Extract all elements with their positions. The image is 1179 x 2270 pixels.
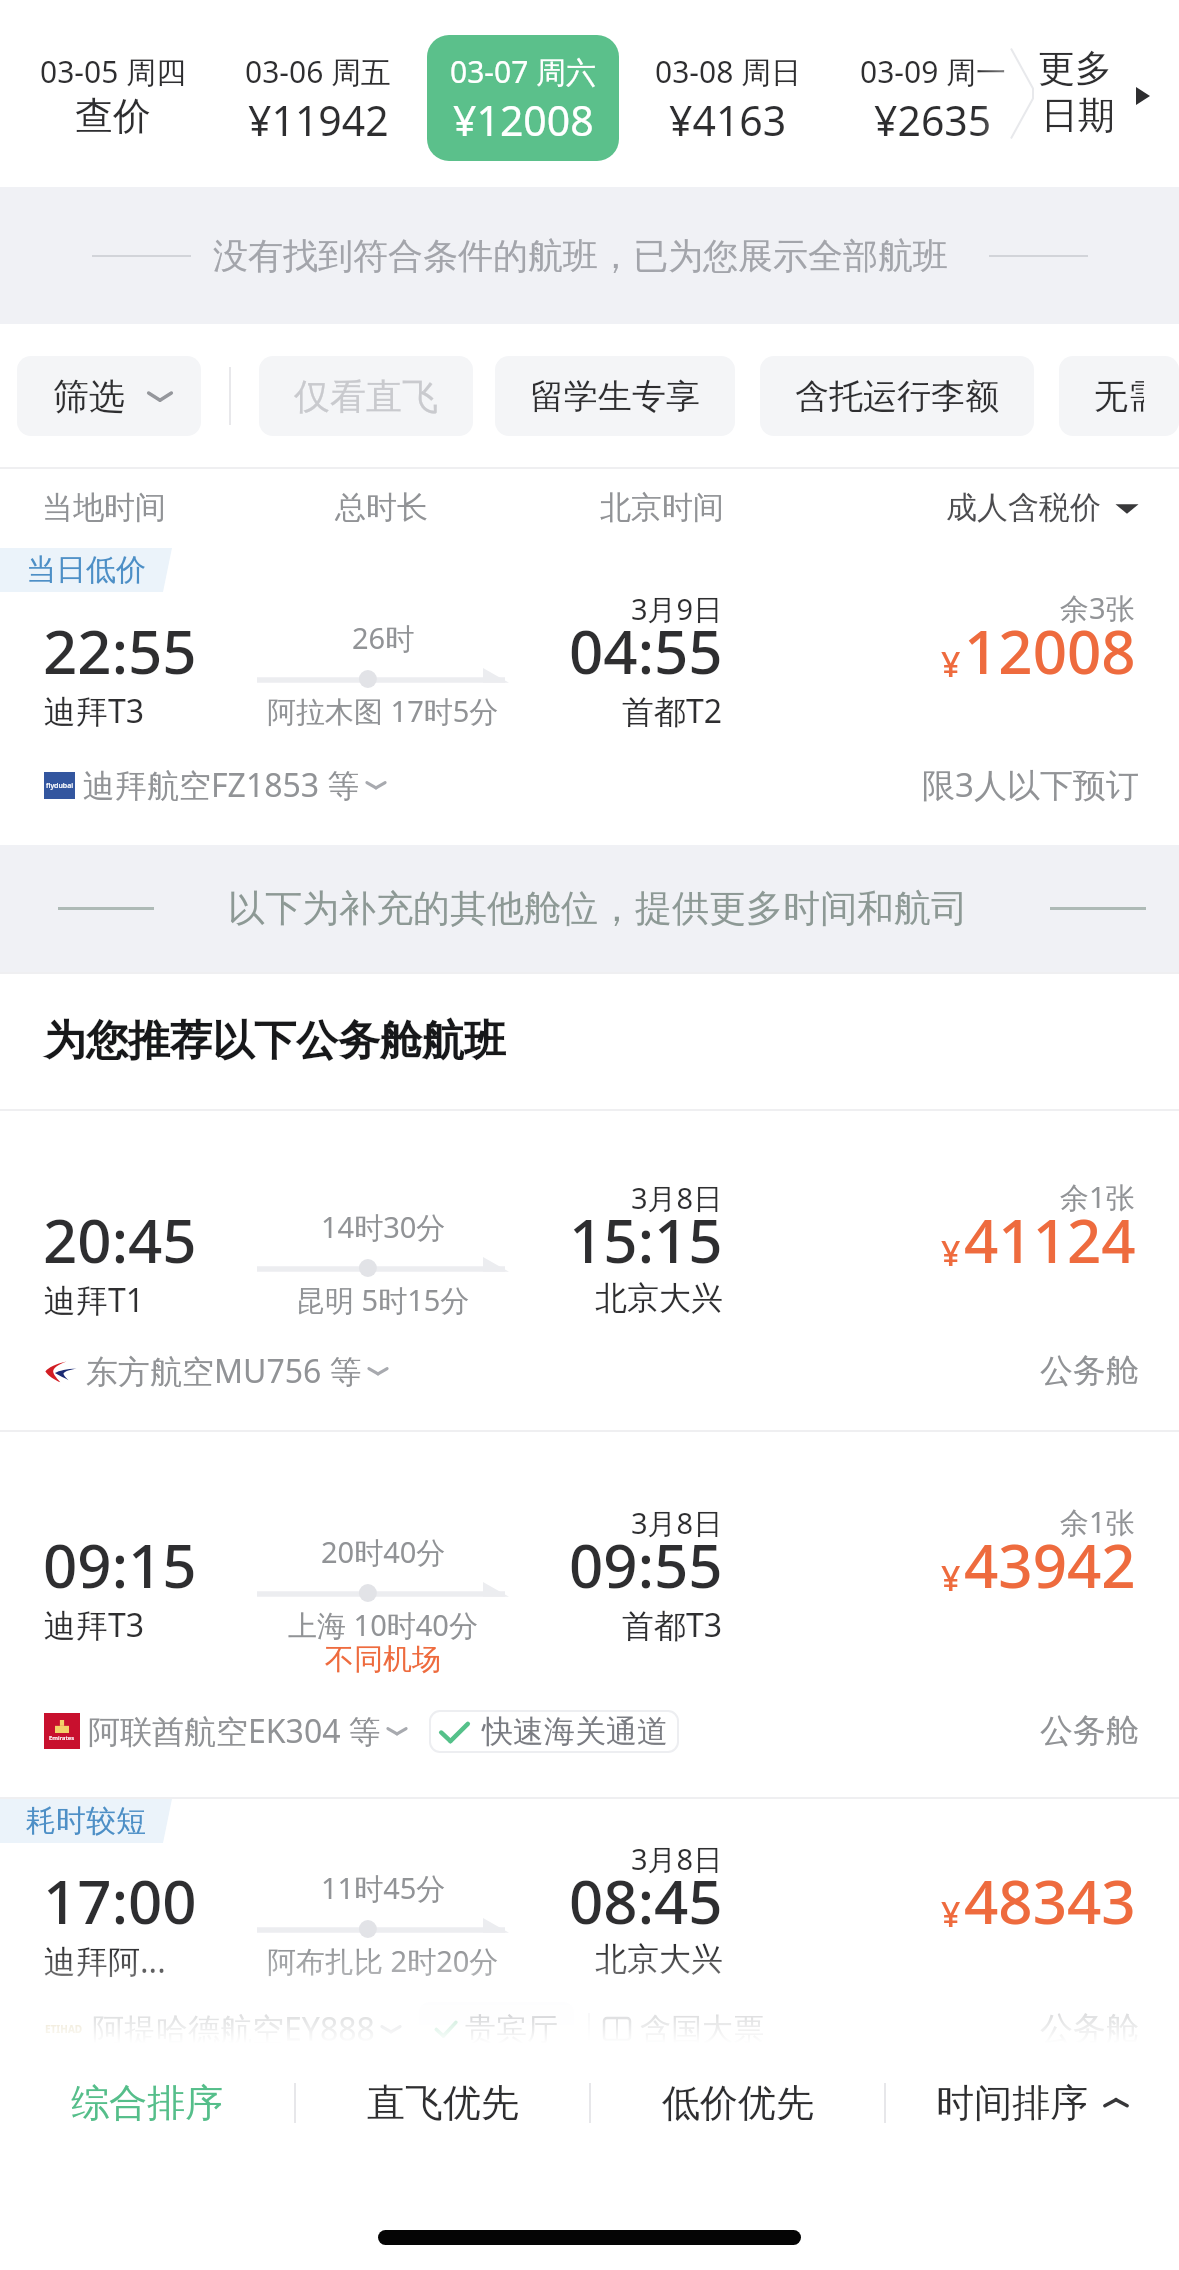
button[interactable]: 03-08 周日	[632, 35, 824, 161]
staticText: 低价优先	[662, 2079, 814, 2127]
staticText: 上海 10时40分	[288, 1605, 478, 1645]
staticText: 迪拜阿...	[44, 1939, 166, 1983]
other: 更多日期	[1136, 87, 1150, 105]
staticText: 阿拉木图 17时5分	[267, 691, 499, 731]
staticText: 查价	[75, 92, 151, 140]
staticText: 总时长	[335, 488, 428, 527]
staticText: 北京大兴	[595, 1278, 723, 1318]
staticText: 公务舱	[1040, 2008, 1139, 2050]
staticText: 03-08 周日	[655, 51, 802, 92]
staticText: 20时40分	[321, 1532, 446, 1572]
staticText: 09:15	[43, 1524, 197, 1606]
staticText: 48343	[964, 1860, 1136, 1942]
staticText: 首都T2	[622, 689, 723, 733]
button[interactable]: flydubai	[44, 763, 388, 807]
staticText: 余1张	[1060, 1177, 1135, 1217]
staticText: 迪拜T1	[44, 1278, 145, 1322]
button[interactable]: 低价优先	[591, 2044, 884, 2162]
staticText: 当地时间	[42, 488, 166, 527]
staticText: 22:55	[43, 610, 197, 692]
button[interactable]: 快速海关通道	[429, 1710, 679, 1753]
staticText: 日期	[1041, 92, 1115, 139]
button[interactable]: 含托运行李额	[760, 356, 1034, 436]
staticText: ¥	[941, 1230, 961, 1276]
button[interactable]: 更多	[1035, 0, 1179, 187]
staticText: 阿布扎比 2时20分	[267, 1941, 499, 1981]
button[interactable]: 09:15	[0, 1432, 1179, 1799]
staticText: 11时45分	[321, 1868, 446, 1908]
button[interactable]: ETIHAD	[44, 2007, 403, 2051]
staticText: 快速海关通道	[482, 1712, 668, 1751]
button[interactable]: Emirates	[44, 1709, 409, 1753]
staticText: 迪拜T3	[44, 689, 145, 733]
button[interactable]: 仅看直飞	[259, 356, 473, 436]
staticText: 03-05 周四	[40, 51, 187, 92]
button[interactable]: 03-06 周五	[222, 35, 414, 161]
staticText: 北京时间	[600, 488, 724, 527]
staticText: 迪拜航空FZ1853 等	[83, 763, 360, 807]
staticText: 含托运行李额	[795, 375, 999, 418]
staticText: 成人含税价	[946, 488, 1101, 527]
staticText: 昆明 5时15分	[296, 1280, 470, 1320]
staticText: 公务舱	[1040, 1710, 1139, 1752]
staticText: 43942	[964, 1524, 1136, 1606]
staticText: 3月9日	[631, 589, 723, 629]
staticText: 14时30分	[321, 1207, 446, 1247]
staticText: 含国大票	[640, 2010, 764, 2049]
staticText: ¥11942	[248, 92, 389, 148]
staticText: 更多	[1038, 45, 1112, 92]
button[interactable]: 耗时较短	[0, 1799, 1179, 2129]
button[interactable]: 03-07 周六	[427, 35, 619, 161]
button[interactable]: 03-05 周四	[17, 35, 209, 161]
staticText: 04:55	[569, 610, 723, 692]
button[interactable]: 综合排序	[0, 2044, 294, 2162]
staticText: 12008	[964, 610, 1136, 692]
staticText: 东方航空MU756 等	[86, 1349, 362, 1393]
staticText: 20:45	[43, 1199, 197, 1281]
staticText: ETIHAD	[45, 2022, 83, 2036]
staticText: 仅看直飞	[294, 374, 438, 419]
staticText: 没有找到符合条件的航班，已为您展示全部航班	[213, 234, 948, 278]
staticText: ¥	[941, 641, 961, 687]
staticText: 首都T3	[622, 1603, 723, 1647]
staticText: 03-09 周一	[860, 51, 1007, 92]
staticText: 3月8日	[631, 1178, 723, 1218]
button[interactable]: 20:45	[0, 1111, 1179, 1432]
staticText: 筛选	[53, 374, 125, 419]
staticText: 耗时较短	[26, 1802, 146, 1840]
staticText: 时间排序	[936, 2079, 1088, 2127]
button[interactable]: 筛选	[17, 356, 201, 436]
staticText: 留学生专享	[530, 375, 700, 418]
staticText: ¥2635	[874, 92, 992, 148]
staticText: flydubai	[46, 781, 74, 791]
staticText: 03-06 周五	[245, 51, 392, 92]
button[interactable]: 03-09 周一	[837, 35, 1029, 161]
button[interactable]: 留学生专享	[495, 356, 735, 436]
staticText: 以下为补充的其他舱位，提供更多时间和航司	[228, 885, 968, 932]
staticText: 15:15	[569, 1199, 723, 1281]
staticText: 直飞优先	[367, 2079, 519, 2127]
staticText: 当日低价	[26, 551, 146, 589]
button[interactable]: 成人含税价	[946, 488, 1139, 527]
staticText: 公务舱	[1040, 1350, 1139, 1392]
staticText: 3月8日	[631, 1839, 723, 1879]
button[interactable]: 贵宾厅	[435, 2002, 558, 2056]
staticText: 26时	[352, 618, 415, 658]
button[interactable]: 无需中转签证	[1059, 356, 1179, 436]
staticText: ¥	[941, 1555, 961, 1601]
staticText: 北京大兴	[595, 1939, 723, 1979]
button[interactable]: 时间排序	[886, 2044, 1179, 2162]
staticText: 余3张	[1060, 588, 1135, 628]
staticText: 贵宾厅	[465, 2010, 558, 2049]
staticText: 无需中转签证	[1094, 375, 1144, 418]
staticText: ¥12008	[453, 92, 594, 148]
staticText: 综合排序	[71, 2079, 223, 2127]
button[interactable]: 当日低价	[0, 545, 1179, 845]
staticText: 17:00	[43, 1860, 197, 1942]
staticText: 3月8日	[631, 1503, 723, 1543]
button[interactable]: 东方航空MU756 等	[44, 1349, 390, 1393]
button[interactable]: 直飞优先	[296, 2044, 589, 2162]
staticText: 余1张	[1060, 1502, 1135, 1542]
staticText: 为您推荐以下公务舱航班	[44, 1015, 506, 1068]
staticText: 41124	[964, 1199, 1136, 1281]
